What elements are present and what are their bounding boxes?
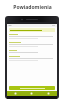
button[interactable]: Notifications xyxy=(23,91,40,96)
staticText: Powiadomienia xyxy=(13,4,52,11)
button[interactable] xyxy=(9,86,55,90)
button[interactable] xyxy=(9,34,55,42)
button[interactable]: Profile xyxy=(40,91,57,96)
button[interactable]: Home xyxy=(7,91,23,96)
button[interactable] xyxy=(9,56,55,64)
button[interactable] xyxy=(9,50,55,56)
button[interactable] xyxy=(9,28,55,32)
button[interactable] xyxy=(9,42,55,50)
